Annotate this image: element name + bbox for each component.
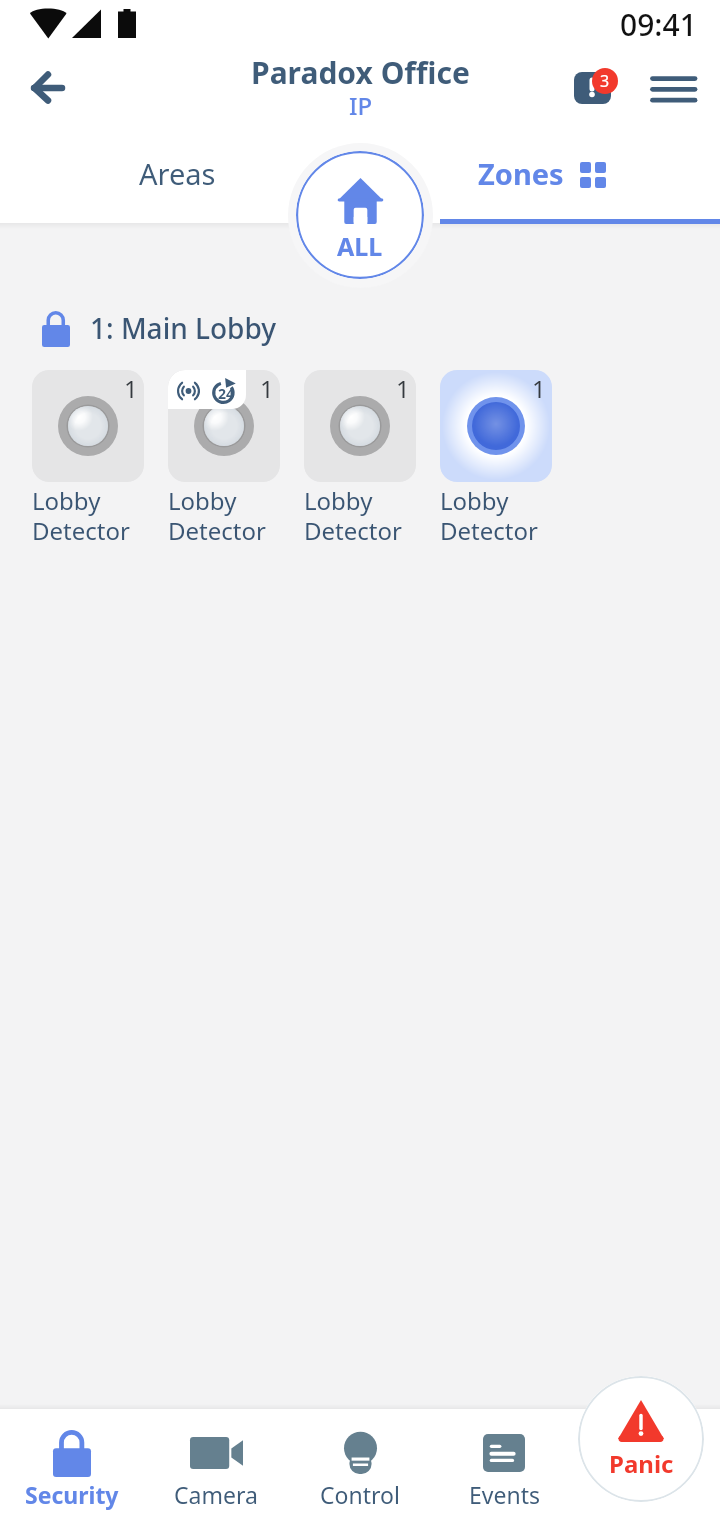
button[interactable]: 1 (168, 370, 280, 482)
staticText: 1 (532, 372, 546, 405)
staticText: 09:41 (620, 4, 697, 45)
staticText: 1: Main Lobby (90, 309, 277, 347)
button[interactable]: Control (288, 1409, 432, 1520)
staticText: 1 (396, 372, 410, 405)
staticText: Security (25, 1479, 119, 1510)
staticText: IP (349, 89, 373, 122)
staticText: Events (469, 1479, 540, 1510)
button[interactable]: Areas (0, 136, 356, 210)
button[interactable]: 1 (304, 370, 416, 482)
staticText: Lobby Detector (32, 484, 130, 547)
button[interactable]: Back (20, 62, 76, 118)
button[interactable]: Menu (644, 59, 702, 111)
button[interactable]: Alerts (566, 63, 626, 113)
button[interactable]: Zones (356, 136, 720, 210)
button[interactable]: Events (432, 1409, 576, 1520)
button[interactable]: 1 (440, 370, 552, 482)
staticText: 1 (124, 372, 138, 405)
staticText: Lobby Detector (168, 484, 266, 547)
staticText: 3 (600, 70, 610, 92)
staticText: 24 (218, 384, 235, 403)
staticText: 1 (260, 372, 274, 405)
button[interactable]: ALL (296, 151, 424, 279)
button[interactable]: 1 (32, 370, 144, 482)
staticText: Camera (174, 1479, 258, 1510)
staticText: Lobby Detector (440, 484, 538, 547)
staticText: Lobby Detector (304, 484, 402, 547)
button[interactable]: Security (0, 1409, 144, 1520)
staticText: Areas (139, 154, 216, 193)
staticText: Paradox Office (251, 52, 470, 93)
staticText: ALL (337, 229, 383, 263)
staticText: Panic (609, 1447, 674, 1480)
button[interactable]: Camera (144, 1409, 288, 1520)
staticText: Control (320, 1479, 400, 1510)
staticText: Zones (478, 154, 564, 193)
button[interactable]: Panic (578, 1376, 704, 1502)
